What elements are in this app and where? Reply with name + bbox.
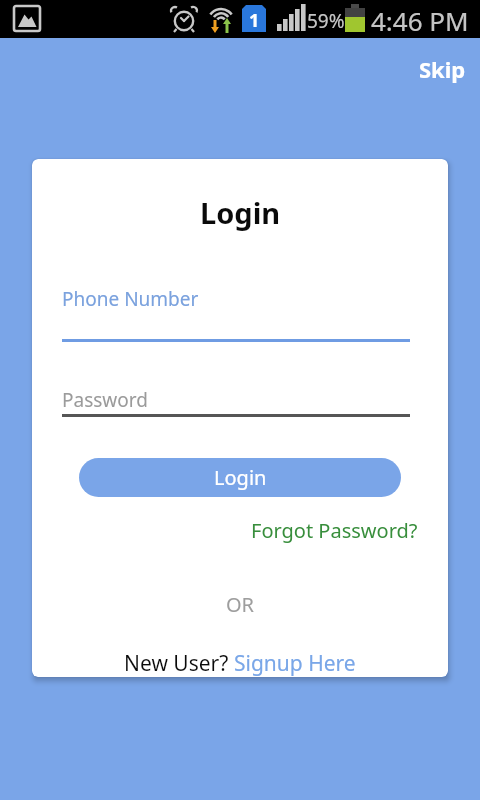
staticText: Login bbox=[200, 193, 281, 232]
staticText: 4:46 PM bbox=[371, 3, 469, 38]
button[interactable]: Signup Here bbox=[234, 649, 356, 677]
button[interactable]: Skip bbox=[419, 54, 466, 84]
button[interactable]: Login bbox=[79, 458, 401, 497]
staticText: 59% bbox=[307, 8, 345, 34]
button[interactable]: Forgot Password? bbox=[251, 517, 418, 544]
staticText: 1 bbox=[249, 8, 260, 33]
staticText: OR bbox=[226, 591, 255, 618]
staticText: New User? bbox=[124, 649, 234, 677]
staticText: Login bbox=[214, 464, 267, 491]
button[interactable]: Phone Number bbox=[62, 286, 199, 312]
button[interactable]: Password bbox=[62, 387, 148, 413]
